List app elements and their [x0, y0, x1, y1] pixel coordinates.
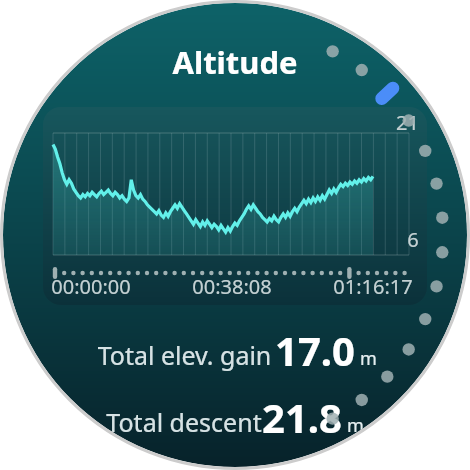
staticText: m	[342, 413, 364, 438]
button[interactable]: Altitude	[3, 41, 467, 83]
staticText: Altitude	[172, 41, 298, 83]
staticText: 21.8	[262, 390, 342, 444]
button[interactable]: 21	[43, 107, 427, 305]
staticText: 00:38:08	[192, 273, 272, 300]
staticText: 6	[407, 226, 419, 253]
other: Scroll position	[3, 3, 467, 467]
staticText: m	[355, 346, 377, 371]
staticText: Total elev. gain	[94, 338, 275, 372]
staticText: 00:00:00	[51, 273, 131, 300]
staticText: Total descent	[106, 405, 262, 439]
staticText: 17.0	[275, 323, 355, 377]
staticText: 21	[396, 109, 419, 136]
staticText: 01:16:17	[333, 273, 413, 300]
button[interactable]: Total elev. gain	[3, 323, 467, 377]
button[interactable]: Total descent	[3, 390, 467, 444]
